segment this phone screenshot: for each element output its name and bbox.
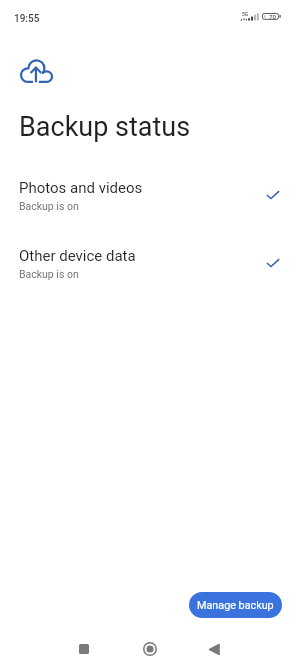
- staticText: 19:55: [14, 13, 40, 25]
- button[interactable]: Other device data: [0, 240, 300, 286]
- staticText: Other device data: [19, 247, 136, 265]
- button[interactable]: Home: [134, 633, 166, 665]
- staticText: 5G: [242, 11, 249, 17]
- button[interactable]: Back: [198, 633, 230, 665]
- staticText: Backup is on: [19, 268, 79, 280]
- staticText: Photos and videos: [19, 179, 143, 197]
- staticText: 70: [269, 13, 277, 20]
- button[interactable]: Photos and videos: [0, 172, 300, 218]
- button[interactable]: Manage backup: [189, 592, 282, 618]
- button[interactable]: Recents: [68, 633, 100, 665]
- staticText: Backup is on: [19, 200, 79, 212]
- staticText: Manage backup: [197, 599, 274, 612]
- staticText: Backup status: [19, 111, 191, 143]
